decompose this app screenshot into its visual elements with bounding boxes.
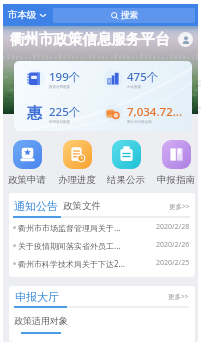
staticText: 政策适用对象 — [14, 315, 68, 326]
button[interactable]: 7,034.72... — [103, 96, 192, 131]
button[interactable]: 475个 — [103, 61, 192, 96]
staticText: 政策申请 — [8, 174, 46, 186]
staticText: 办件数量 — [127, 85, 141, 89]
button[interactable]: 办理进度 — [57, 140, 97, 186]
staticText: 2020/2/28 — [156, 222, 190, 232]
button[interactable]: 通知公告 — [13, 199, 59, 213]
button[interactable]: 更多>> — [169, 202, 190, 213]
staticText: 225个 — [49, 104, 81, 120]
button[interactable]: 衢州市科学技术局关于下达2... — [13, 254, 190, 272]
button[interactable]: 衢州市市场监督管理局关于... — [13, 218, 190, 236]
staticText: 更多>> — [169, 202, 190, 211]
staticText: 2020/2/26 — [156, 240, 190, 250]
staticText: 衢州市政策信息服务平台 — [10, 30, 170, 48]
staticText: 惠 — [27, 104, 42, 123]
staticText: 累计兑付资金额 — [127, 120, 152, 124]
button[interactable]: 政策适用对象 — [14, 315, 68, 334]
button[interactable]: 搜索 — [53, 8, 195, 23]
button[interactable]: 更多>> — [168, 292, 189, 303]
button[interactable]: 政策文件 — [62, 199, 102, 213]
button[interactable]: 惠 — [25, 96, 103, 131]
button[interactable]: 申报大厅 — [14, 290, 60, 304]
staticText: 衢州市科学技术局关于下达2... — [18, 258, 154, 269]
button[interactable]: 用户中心 — [178, 32, 193, 47]
staticText: 政策文件 — [63, 200, 101, 212]
button[interactable]: 199个 — [25, 61, 103, 96]
staticText: 关于疫情期间落实省外员工... — [18, 240, 154, 251]
button[interactable]: 政策申请 — [7, 140, 47, 186]
staticText: 申报指南 — [157, 174, 195, 186]
staticText: 市本级 — [8, 9, 37, 21]
staticText: 更多>> — [168, 292, 189, 301]
staticText: 199个 — [49, 69, 81, 85]
staticText: 政策法规数量 — [49, 85, 70, 89]
staticText: 通知公告 — [14, 199, 58, 213]
staticText: 2020/2/25 — [156, 258, 190, 268]
staticText: 结果公示 — [107, 174, 145, 186]
staticText: 475个 — [127, 69, 159, 85]
button[interactable]: 市本级 — [7, 7, 48, 23]
staticText: 办理进度 — [58, 174, 96, 186]
staticText: 7,034.72... — [127, 104, 183, 120]
staticText: 申报项目数量 — [49, 120, 70, 124]
button[interactable]: 关于疫情期间落实省外员工... — [13, 236, 190, 254]
staticText: 衢州市市场监督管理局关于... — [18, 222, 154, 233]
button[interactable]: 申报指南 — [156, 140, 196, 186]
button[interactable]: 结果公示 — [106, 140, 146, 186]
staticText: 搜索 — [121, 10, 138, 21]
staticText: 申报大厅 — [15, 290, 59, 304]
